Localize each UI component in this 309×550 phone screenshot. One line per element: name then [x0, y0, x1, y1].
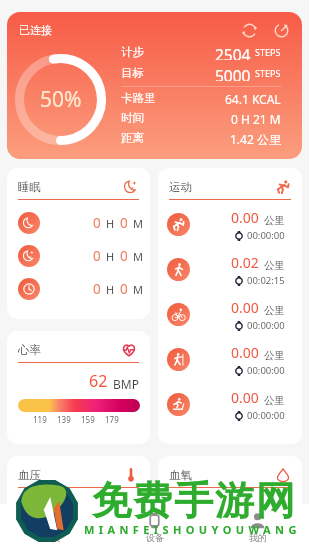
staticText: 0.00 — [231, 298, 259, 317]
staticText: 00:02:15 — [247, 274, 285, 287]
button[interactable]: 首页 — [0, 504, 103, 550]
staticText: 0 — [93, 214, 101, 232]
staticText: 159 — [81, 414, 95, 425]
staticText: 公里 — [264, 259, 285, 272]
button[interactable]: 血氧 — [158, 456, 302, 550]
staticText: H — [106, 282, 115, 297]
staticText: 179 — [105, 414, 119, 425]
staticText: 血压 — [18, 468, 41, 482]
staticText: 运动 — [169, 180, 192, 194]
staticText: 139 — [57, 414, 71, 425]
staticText: 目标 — [121, 66, 144, 80]
staticText: 50% — [40, 85, 82, 114]
staticText: 距离 — [121, 131, 144, 145]
staticText: 我的 — [249, 532, 267, 543]
staticText: 公里 — [264, 214, 285, 227]
staticText: 62 — [89, 370, 108, 392]
staticText: 0 — [120, 247, 128, 265]
button[interactable]: 心率 — [7, 331, 150, 444]
staticText: M — [133, 249, 143, 264]
button[interactable]: 睡眠 — [7, 168, 150, 319]
button[interactable]: 设备 — [103, 504, 206, 550]
staticText: 64.1 KCAL — [225, 91, 281, 105]
staticText: 计步 — [121, 45, 144, 59]
button[interactable]: 0.00 — [167, 292, 285, 337]
button[interactable]: 我的 — [206, 504, 309, 550]
staticText: 2504 — [215, 44, 251, 60]
button[interactable]: 0.00 — [167, 337, 285, 382]
staticText: 0 H 21 M — [231, 111, 281, 125]
staticText: 0 — [93, 247, 101, 265]
staticText: 0 — [93, 280, 101, 298]
button[interactable]: 0 — [18, 239, 143, 272]
staticText: 0 — [120, 280, 128, 298]
staticText: STEPS — [255, 46, 281, 58]
staticText: M — [133, 216, 143, 231]
staticText: 0.02 — [231, 253, 259, 272]
staticText: MIANFEISHOUYOUWANG — [84, 522, 301, 537]
staticText: 睡眠 — [18, 180, 41, 194]
staticText: 5000 — [215, 65, 251, 81]
button[interactable]: 运动 — [158, 168, 302, 444]
staticText: 公里 — [264, 304, 285, 317]
button[interactable]: 血压 — [7, 456, 150, 550]
staticText: 卡路里 — [121, 91, 156, 105]
staticText: 时间 — [121, 111, 144, 125]
staticText: BMP — [113, 376, 139, 392]
staticText: 0.00 — [231, 208, 259, 227]
button[interactable]: 0 — [18, 206, 143, 239]
staticText: 119 — [33, 414, 47, 425]
button[interactable]: 0.00 — [167, 202, 285, 247]
staticText: 00:00:00 — [247, 229, 285, 242]
staticText: H — [106, 216, 115, 231]
staticText: 心率 — [18, 343, 41, 357]
staticText: 00:00:00 — [247, 319, 285, 332]
staticText: 公里 — [264, 394, 285, 407]
staticText: 0.00 — [231, 388, 259, 407]
staticText: 00:00:00 — [247, 364, 285, 377]
button[interactable]: 0.00 — [167, 382, 285, 427]
staticText: STEPS — [255, 67, 281, 79]
button[interactable]: 0.02 — [167, 247, 285, 292]
staticText: 首页 — [43, 532, 61, 543]
staticText: 公里 — [264, 349, 285, 362]
button[interactable]: Sync — [240, 21, 259, 40]
button[interactable]: 已连接 — [7, 12, 302, 159]
staticText: 已连接 — [19, 23, 52, 37]
staticText: 血氧 — [169, 468, 192, 482]
staticText: 免费手游网 — [91, 476, 296, 525]
staticText: M — [133, 282, 143, 297]
staticText: 0 — [120, 214, 128, 232]
button[interactable]: 0 — [18, 272, 143, 305]
staticText: H — [106, 249, 115, 264]
button[interactable]: Refresh — [272, 21, 291, 40]
staticText: 1.42 公里 — [230, 131, 281, 145]
staticText: 0.00 — [231, 343, 259, 362]
staticText: 00:00:00 — [247, 409, 285, 422]
staticText: 设备 — [146, 532, 164, 543]
